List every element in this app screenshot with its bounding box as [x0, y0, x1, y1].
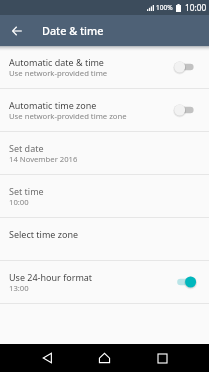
button[interactable]: Automatic date & time [0, 46, 209, 88]
staticText: Use 24-hour format [9, 271, 93, 283]
staticText: 14 November 2016 [9, 154, 78, 164]
button[interactable]: Set time [0, 175, 209, 217]
staticText: Set time [9, 185, 44, 197]
button[interactable]: Home [85, 344, 124, 372]
button[interactable]: Automatic time zone [0, 89, 209, 131]
button[interactable]: Back [28, 344, 66, 372]
button[interactable]: Recent apps [143, 344, 182, 372]
staticText: Select time zone [9, 228, 79, 240]
staticText: 10:00 [9, 197, 29, 207]
button[interactable]: Select time zone [0, 218, 209, 260]
staticText: 13:00 [9, 283, 29, 293]
staticText: Use network-provided time zone [9, 111, 127, 121]
staticText: Automatic time zone [9, 99, 97, 111]
button[interactable]: Set date [0, 132, 209, 174]
staticText: Use network-provided time [9, 68, 108, 78]
staticText: Date & time [42, 23, 104, 38]
staticText: Set date [9, 142, 44, 154]
staticText: Automatic date & time [9, 56, 104, 68]
staticText: 10:00 [185, 2, 207, 13]
button[interactable]: Navigate up [0, 15, 33, 46]
staticText: 100% [156, 3, 173, 12]
button[interactable]: Use 24-hour format [0, 261, 209, 303]
